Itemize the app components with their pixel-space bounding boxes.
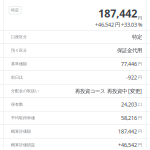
button[interactable]: 概算評価額: [0, 125, 150, 138]
staticText: 基準価額: [11, 61, 27, 66]
button[interactable]: 前日比: [0, 71, 150, 84]
button[interactable]: 概算評価損益: [0, 138, 150, 150]
button[interactable]: 口座区分: [0, 30, 150, 43]
staticText: 保有数: [11, 102, 23, 107]
button[interactable]: 分配金の取扱い: [0, 84, 150, 97]
staticText: 円: [137, 129, 142, 134]
staticText: 平均取得単価: [11, 115, 35, 120]
staticText: 円: [137, 61, 142, 66]
staticText: +46,542: [118, 141, 137, 148]
staticText: 187,442: [98, 6, 137, 21]
button[interactable]: 保有数: [0, 98, 150, 111]
staticText: 187,442: [118, 128, 137, 135]
staticText: 口座区分: [11, 34, 27, 39]
staticText: 特定: [11, 8, 19, 13]
staticText: 円: [137, 75, 142, 80]
staticText: 保証金代用: [117, 47, 142, 54]
button[interactable]: 特定: [9, 6, 21, 14]
button[interactable]: 基準価額: [0, 57, 150, 70]
staticText: 概算評価損益: [11, 142, 35, 147]
staticText: 77,446: [121, 60, 137, 67]
staticText: 預り区分: [11, 48, 27, 53]
staticText: 概算評価額: [11, 129, 31, 134]
staticText: 円: [137, 115, 142, 120]
staticText: 円: [137, 142, 142, 147]
staticText: 24,203: [121, 101, 137, 108]
button[interactable]: 平均取得単価: [0, 111, 150, 124]
staticText: 前日比: [11, 75, 23, 80]
staticText: +46,542 円 +33.03 %: [95, 21, 142, 28]
staticText: -922: [126, 74, 137, 81]
staticText: 再投資コース 再投資中 [変更]: [75, 87, 142, 94]
button[interactable]: 預り区分: [0, 44, 150, 57]
staticText: 分配金の取扱い: [11, 88, 39, 93]
staticText: 円: [138, 16, 142, 20]
staticText: 特定: [132, 34, 142, 40]
staticText: 口: [137, 102, 142, 107]
staticText: 58,216: [121, 114, 137, 121]
